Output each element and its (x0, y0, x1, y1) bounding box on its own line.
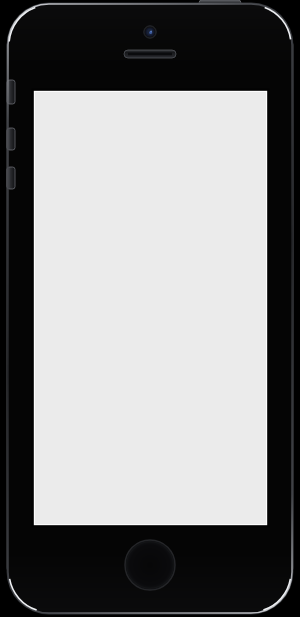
button[interactable]: iPhone device mockup (0, 0, 300, 617)
button[interactable]: Home button (125, 540, 175, 590)
